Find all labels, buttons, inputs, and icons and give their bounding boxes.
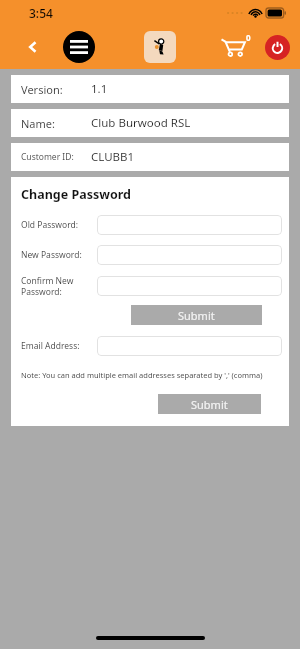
staticText: Note: You can add multiple email address… (21, 370, 263, 380)
button[interactable] (97, 336, 282, 356)
staticText: 1.1 (91, 81, 108, 97)
button[interactable] (97, 215, 282, 235)
staticText: Submit (191, 397, 228, 412)
staticText: Confirm New Password: (21, 275, 74, 297)
staticText: Old Password: (21, 219, 78, 231)
button[interactable]: Back (18, 32, 48, 62)
staticText: Club Burwood RSL (91, 115, 191, 131)
button[interactable]: Name: (11, 109, 289, 137)
staticText: 0 (246, 32, 251, 43)
staticText: 3:54 (29, 5, 53, 21)
button[interactable]: Menu (63, 31, 95, 63)
button[interactable]: Home logo (144, 31, 176, 63)
staticText: Name: (21, 116, 55, 131)
button[interactable]: Cart (216, 29, 252, 65)
button[interactable] (97, 245, 282, 265)
button[interactable]: Submit (131, 305, 262, 325)
staticText: Version: (21, 82, 63, 97)
staticText: Change Password (21, 186, 131, 203)
button[interactable]: Version: (11, 75, 289, 103)
button[interactable]: Log out (265, 35, 290, 60)
staticText: Submit (178, 308, 215, 323)
staticText: New Password: (21, 249, 82, 261)
button[interactable] (97, 276, 282, 296)
staticText: CLUBB1 (91, 149, 135, 165)
staticText: Email Address: (21, 340, 80, 352)
staticText: Customer ID: (21, 151, 74, 163)
button[interactable]: Submit (158, 394, 261, 414)
button[interactable]: Customer ID: (11, 143, 289, 171)
